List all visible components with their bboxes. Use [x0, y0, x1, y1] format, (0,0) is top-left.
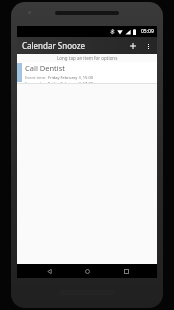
- button[interactable]: More options: [141, 39, 155, 53]
- button[interactable]: Home: [80, 264, 94, 278]
- staticText: Event time:: [25, 75, 48, 80]
- staticText: Friday February 3, 17:00: [48, 81, 94, 83]
- staticText: 05:09: [141, 28, 154, 35]
- staticText: Calendar Snooze: [22, 40, 86, 51]
- staticText: Call Dentist: [25, 63, 66, 73]
- button[interactable]: Call Dentist: [17, 62, 157, 83]
- staticText: Friday February 3, 15:00: [48, 75, 94, 80]
- button[interactable]: Back: [42, 264, 56, 278]
- button[interactable]: Add: [125, 38, 141, 54]
- staticText: Snoozed Until:: [25, 81, 48, 83]
- staticText: Long tap an item for options: [57, 55, 118, 61]
- button[interactable]: Recent apps: [119, 264, 133, 278]
